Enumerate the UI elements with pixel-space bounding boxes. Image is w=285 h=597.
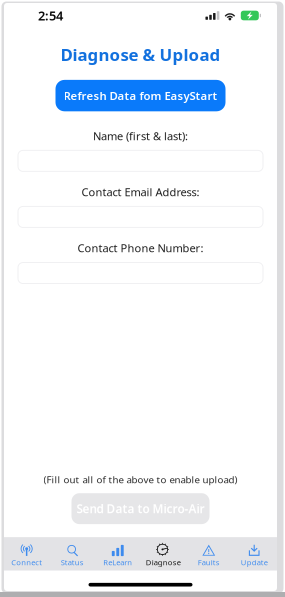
- staticText: Diagnose & Upload: [60, 43, 220, 66]
- button[interactable]: Send Data to Micro-Air: [71, 493, 209, 524]
- button[interactable]: ReLearn: [95, 537, 140, 570]
- staticText: Send Data to Micro-Air: [76, 501, 204, 517]
- button[interactable]: Connect: [4, 537, 49, 570]
- staticText: Faults: [198, 557, 220, 567]
- button[interactable]: [18, 206, 263, 227]
- button[interactable]: Status: [49, 537, 95, 570]
- button[interactable]: Diagnose: [140, 537, 186, 570]
- staticText: Update: [241, 557, 268, 567]
- staticText: Name (first & last):: [93, 128, 188, 143]
- button[interactable]: Faults: [186, 537, 231, 570]
- button[interactable]: Update: [231, 537, 277, 570]
- staticText: Refresh Data fom EasyStart: [63, 88, 217, 103]
- button[interactable]: [18, 262, 263, 283]
- button[interactable]: Refresh Data fom EasyStart: [55, 80, 225, 111]
- staticText: Contact Phone Number:: [77, 240, 203, 256]
- staticText: Diagnose: [146, 557, 181, 567]
- staticText: ReLearn: [103, 557, 132, 567]
- staticText: Contact Email Address:: [81, 184, 199, 199]
- staticText: 2:54: [38, 7, 63, 24]
- staticText: Status: [61, 557, 84, 567]
- staticText: Connect: [11, 557, 42, 567]
- staticText: (Fill out all of the above to enable upl…: [43, 473, 237, 486]
